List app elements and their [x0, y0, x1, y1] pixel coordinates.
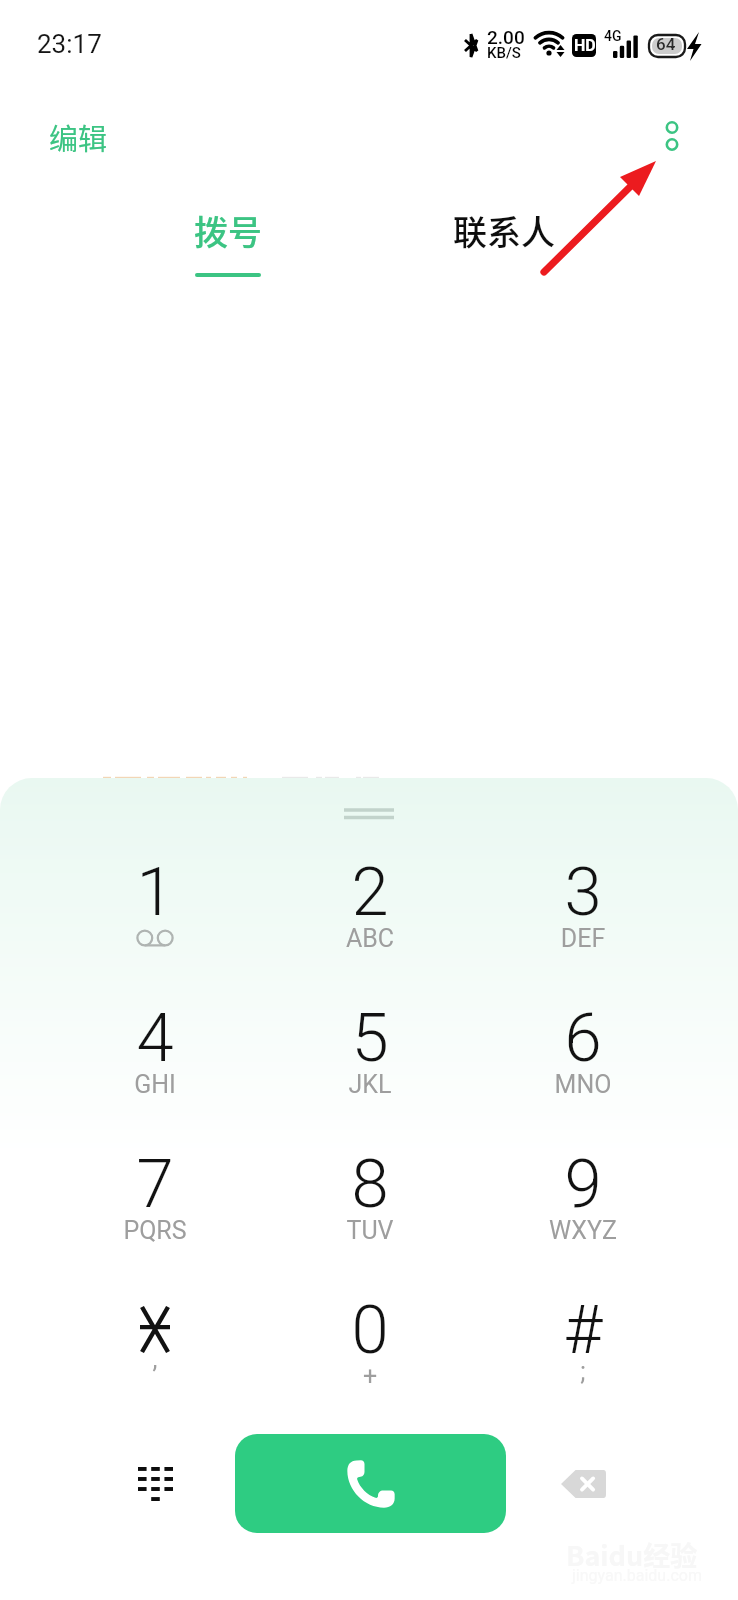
staticText: Baidu经验	[566, 1535, 698, 1574]
staticText: HD	[574, 36, 596, 55]
staticText: 联系人	[453, 206, 555, 255]
button[interactable]: 2	[263, 853, 477, 999]
staticText: 5	[263, 999, 477, 1078]
button[interactable]: 3	[476, 853, 690, 999]
button[interactable]: 联系人	[419, 198, 589, 263]
staticText: 编辑	[49, 116, 108, 158]
staticText: 9	[476, 1145, 690, 1224]
staticText: 1	[48, 853, 262, 932]
button[interactable]: More options	[640, 104, 704, 168]
staticText: PQRS	[48, 1216, 262, 1245]
button[interactable]: 0	[263, 1291, 477, 1437]
staticText: JKL	[263, 1070, 477, 1099]
staticText: 4G	[604, 28, 622, 44]
button[interactable]: #	[476, 1291, 690, 1437]
staticText: GHI	[48, 1070, 262, 1099]
staticText: 2.00	[487, 26, 525, 48]
button[interactable]: Show keypad	[107, 1436, 203, 1532]
staticText: 64	[656, 34, 676, 54]
staticText: ,	[48, 1345, 262, 1374]
staticText: 3	[476, 853, 690, 932]
staticText: 4	[48, 999, 262, 1078]
staticText: 8	[263, 1145, 477, 1224]
staticText: 0	[263, 1291, 477, 1370]
staticText: MNO	[476, 1070, 690, 1099]
staticText: ABC	[263, 924, 477, 953]
staticText: ;	[476, 1357, 690, 1386]
button[interactable]: 8	[263, 1145, 477, 1291]
staticText: #	[476, 1291, 690, 1370]
staticText: WXYZ	[476, 1216, 690, 1245]
staticText: 6	[476, 999, 690, 1078]
staticText: TUV	[263, 1216, 477, 1245]
staticText: 拨号	[194, 206, 262, 255]
button[interactable]: 1	[48, 853, 262, 999]
button[interactable]: 9	[476, 1145, 690, 1291]
staticText: KB/S	[487, 44, 521, 62]
staticText: 7	[48, 1145, 262, 1224]
button[interactable]: ,	[48, 1291, 262, 1437]
button[interactable]: 4	[48, 999, 262, 1145]
staticText: 23:17	[37, 29, 102, 59]
button[interactable]: 6	[476, 999, 690, 1145]
staticText: DEF	[476, 924, 690, 953]
button[interactable]: Call	[235, 1434, 506, 1533]
button[interactable]: 编辑	[19, 102, 138, 172]
button[interactable]: Backspace	[535, 1436, 631, 1532]
staticText: +	[263, 1362, 477, 1391]
button[interactable]: 拨号	[160, 198, 296, 285]
staticText: 2	[263, 853, 477, 932]
button[interactable]: 5	[263, 999, 477, 1145]
button[interactable]: 7	[48, 1145, 262, 1291]
